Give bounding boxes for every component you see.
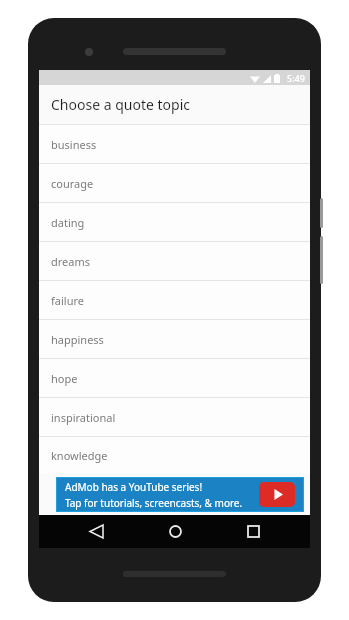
button[interactable]: knowledge — [39, 437, 310, 473]
staticText: dreams — [51, 254, 91, 269]
button[interactable]: happiness — [39, 320, 310, 358]
staticText: Choose a quote topic — [51, 95, 190, 114]
staticText: dating — [51, 215, 85, 230]
staticText: AdMob has a YouTube series! — [65, 480, 203, 494]
button[interactable]: Recent apps — [231, 515, 275, 548]
staticText: happiness — [51, 332, 104, 347]
staticText: courage — [51, 176, 94, 191]
staticText: hope — [51, 371, 78, 386]
button[interactable]: inspirational — [39, 398, 310, 436]
button[interactable]: AdMob has a YouTube series! — [57, 478, 303, 511]
staticText: failure — [51, 293, 84, 308]
button[interactable]: courage — [39, 164, 310, 202]
staticText: knowledge — [51, 448, 108, 463]
staticText: 5:49 — [287, 72, 305, 84]
staticText: business — [51, 137, 97, 152]
button[interactable]: failure — [39, 281, 310, 319]
button[interactable]: dreams — [39, 242, 310, 280]
staticText: Tap for tutorials, screencasts, & more. — [65, 496, 243, 510]
button[interactable]: hope — [39, 359, 310, 397]
button[interactable]: Home — [153, 515, 197, 548]
staticText: inspirational — [51, 410, 116, 425]
button[interactable]: business — [39, 125, 310, 163]
button[interactable]: Play YouTube video — [259, 482, 295, 507]
button[interactable]: dating — [39, 203, 310, 241]
button[interactable]: Back — [74, 515, 118, 548]
